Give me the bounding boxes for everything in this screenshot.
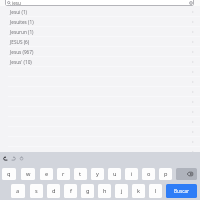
button[interactable]: g xyxy=(81,184,94,198)
staticText: o xyxy=(147,170,151,178)
button[interactable]: i xyxy=(125,168,138,180)
button[interactable]: JESUS (6) xyxy=(0,37,200,47)
button[interactable]: l xyxy=(149,184,162,198)
button[interactable]: Clear search xyxy=(189,1,193,5)
staticText: l xyxy=(155,187,157,195)
staticText: Jesus' (10) xyxy=(10,59,32,65)
button[interactable]: Jesurun (1) xyxy=(0,27,200,37)
button[interactable]: Jesuites (1) xyxy=(0,17,200,27)
staticText: a xyxy=(16,187,20,195)
button[interactable]: k xyxy=(132,184,145,198)
staticText: JESUS (6) xyxy=(10,39,30,45)
button[interactable]: Redo xyxy=(11,156,16,161)
button[interactable]: o xyxy=(142,168,155,180)
staticText: s xyxy=(35,187,38,195)
button[interactable]: y xyxy=(91,168,104,180)
staticText: u xyxy=(113,170,117,178)
staticText: jesu xyxy=(12,0,21,6)
button[interactable]: Buscar xyxy=(166,184,197,198)
button[interactable]: jesu xyxy=(5,0,194,6)
staticText: Jesuites (1) xyxy=(10,19,34,25)
button[interactable]: e xyxy=(40,168,53,180)
button[interactable] xyxy=(0,147,200,157)
button[interactable]: w xyxy=(21,168,35,180)
button[interactable]: q xyxy=(2,168,16,180)
staticText: Buscar xyxy=(174,188,190,194)
staticText: q xyxy=(7,170,11,178)
button[interactable]: h xyxy=(98,184,111,198)
staticText: g xyxy=(86,187,90,195)
staticText: w xyxy=(26,170,31,178)
button[interactable]: Jesui (1) xyxy=(0,7,200,17)
button[interactable]: Paste xyxy=(19,156,24,161)
staticText: d xyxy=(52,187,56,195)
button[interactable]: Jesus' (10) xyxy=(0,57,200,67)
button[interactable]: Backspace xyxy=(176,168,197,180)
staticText: k xyxy=(137,187,140,195)
staticText: e xyxy=(45,170,49,178)
button[interactable]: p xyxy=(159,168,172,180)
button[interactable]: Undo xyxy=(3,156,8,161)
staticText: y xyxy=(96,170,99,178)
button[interactable]: j xyxy=(115,184,128,198)
staticText: h xyxy=(103,187,107,195)
button[interactable]: u xyxy=(108,168,121,180)
staticText: p xyxy=(164,170,168,178)
staticText: r xyxy=(62,170,65,178)
button[interactable]: f xyxy=(64,184,77,198)
button[interactable]: Jesus (967) xyxy=(0,47,200,57)
staticText: Jesus (967) xyxy=(10,49,34,55)
staticText: Jesurun (1) xyxy=(10,29,34,35)
staticText: i xyxy=(131,170,133,178)
staticText: j xyxy=(121,187,123,195)
button[interactable]: s xyxy=(30,184,43,198)
button[interactable]: t xyxy=(74,168,87,180)
button[interactable]: a xyxy=(11,184,25,198)
staticText: f xyxy=(70,187,72,195)
button[interactable]: r xyxy=(57,168,70,180)
staticText: t xyxy=(79,170,82,178)
button[interactable]: d xyxy=(47,184,60,198)
staticText: Jesui (1) xyxy=(10,9,27,15)
